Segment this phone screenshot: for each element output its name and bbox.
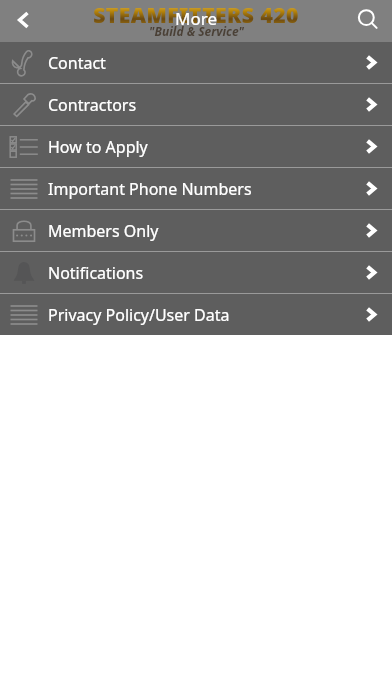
button[interactable]: Search [344,0,392,41]
staticText: How to Apply [48,136,348,158]
button[interactable]: Privacy Policy/User Data [0,294,392,335]
staticText: Important Phone Numbers [48,178,348,200]
staticText: Notifications [48,262,348,284]
button[interactable]: How to Apply [0,126,392,167]
staticText: More [175,7,217,30]
staticText: STEAMFITTERS 420 [93,1,299,30]
staticText: "Build & Service" [149,23,244,39]
button[interactable]: Contractors [0,84,392,125]
staticText: Privacy Policy/User Data [48,304,348,326]
button[interactable]: Back [0,0,48,41]
staticText: Contact [48,52,348,74]
button[interactable]: Important Phone Numbers [0,168,392,209]
button[interactable]: Notifications [0,252,392,293]
button[interactable]: Members Only [0,210,392,251]
staticText: Members Only [48,220,348,242]
staticText: Contractors [48,94,348,116]
button[interactable]: Contact [0,42,392,83]
